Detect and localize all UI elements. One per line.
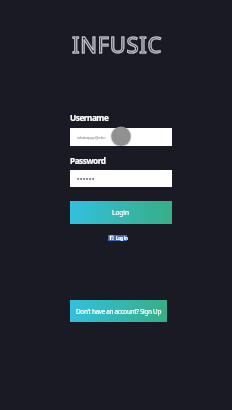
staticText: Password bbox=[70, 155, 106, 166]
staticText: INFUSIC bbox=[72, 29, 163, 59]
staticText: whatsappp@rnko bbox=[77, 135, 106, 140]
button[interactable]: whatsappp@rnko bbox=[70, 128, 172, 146]
button[interactable]: Log in with Facebook bbox=[108, 235, 127, 241]
staticText: Don't have an account? Sign Up bbox=[76, 307, 161, 316]
button[interactable] bbox=[70, 170, 172, 187]
staticText: Username bbox=[70, 112, 109, 123]
staticText: Log in bbox=[116, 235, 128, 241]
staticText: Login bbox=[112, 208, 130, 217]
button[interactable]: Login bbox=[70, 201, 172, 224]
button[interactable]: Don't have an account? Sign Up bbox=[70, 300, 167, 322]
